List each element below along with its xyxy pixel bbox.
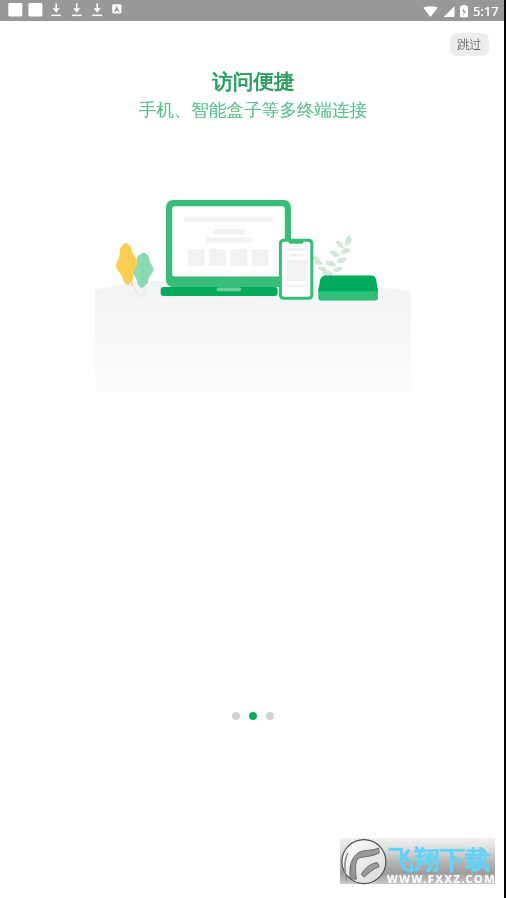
staticText: 跳过 xyxy=(457,37,482,53)
button[interactable]: Page 1 xyxy=(232,712,240,720)
staticText: 手机、智能盒子等多终端连接 xyxy=(0,99,506,121)
staticText: WWW.FXXZ.COM xyxy=(387,871,497,886)
button[interactable]: 跳过 xyxy=(450,33,489,56)
button[interactable]: Page 3 xyxy=(266,712,274,720)
staticText: 访问便捷 xyxy=(0,69,506,95)
staticText: 5:17 xyxy=(473,2,499,20)
button[interactable]: Page 2, current xyxy=(249,712,257,720)
staticText: 飞翔下载 xyxy=(388,844,490,876)
